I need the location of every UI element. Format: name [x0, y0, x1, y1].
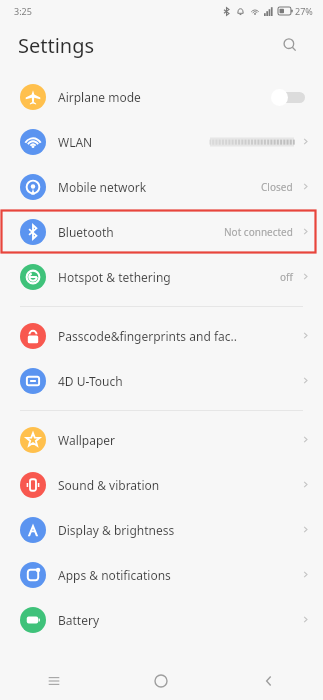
staticText: Closed [261, 180, 293, 194]
button[interactable]: Back [215, 662, 323, 700]
staticText: Sound & vibration [58, 477, 160, 493]
button[interactable]: Hotspot & tethering [0, 254, 323, 299]
button[interactable]: WLAN [0, 119, 323, 164]
staticText: Wallpaper [58, 432, 116, 448]
button[interactable]: Wallpaper [0, 417, 323, 462]
staticText: Bluetooth [58, 224, 114, 240]
button[interactable]: Sound & vibration [0, 462, 323, 507]
button[interactable]: Airplane mode [0, 74, 323, 119]
button[interactable]: Display & brightness [0, 507, 323, 552]
button[interactable]: Recent apps [0, 662, 107, 700]
staticText: 3:25 [14, 5, 32, 17]
staticText: WLAN [58, 134, 93, 150]
staticText: Mobile network [58, 179, 147, 195]
button[interactable]: Passcode&fingerprints and fac.. [0, 313, 323, 358]
staticText: Display & brightness [58, 522, 175, 538]
button[interactable]: 4D U-Touch [0, 358, 323, 403]
button[interactable]: Mobile network [0, 164, 323, 209]
button[interactable]: Apps & notifications [0, 552, 323, 597]
staticText: 27% [295, 5, 313, 17]
staticText: Apps & notifications [58, 567, 171, 583]
button[interactable]: Home [107, 662, 215, 700]
staticText: Not connected [224, 225, 293, 239]
button[interactable]: Search [277, 32, 303, 58]
staticText: Passcode&fingerprints and fac.. [58, 328, 237, 344]
staticText: 4D U-Touch [58, 373, 123, 389]
button[interactable]: Battery [0, 597, 323, 642]
staticText: Hotspot & tethering [58, 269, 171, 285]
staticText: Settings [18, 32, 95, 59]
staticText: Battery [58, 612, 100, 628]
staticText: off [280, 270, 293, 284]
staticText: Airplane mode [58, 89, 141, 105]
button[interactable]: Bluetooth [0, 209, 323, 254]
